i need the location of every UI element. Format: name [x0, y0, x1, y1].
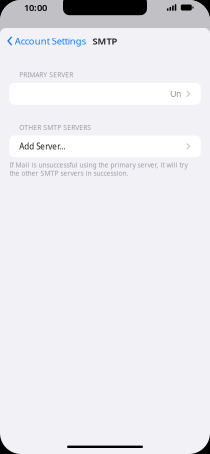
- button[interactable]: Account Settings: [0, 32, 90, 50]
- staticText: PRIMARY SERVER: [19, 70, 73, 79]
- staticText: SMTP: [92, 35, 117, 47]
- button[interactable]: [9, 83, 201, 105]
- staticText: If Mail is unsuccessful using the primar…: [9, 161, 187, 169]
- staticText: Add Server…: [19, 141, 65, 152]
- staticText: OTHER SMTP SERVERS: [19, 123, 91, 132]
- staticText: 10:00: [24, 1, 47, 14]
- button[interactable]: Add Server…: [9, 135, 201, 157]
- staticText: Account Settings: [15, 35, 86, 47]
- staticText: the other SMTP servers in succession.: [9, 169, 128, 178]
- staticText: On: [170, 88, 181, 99]
